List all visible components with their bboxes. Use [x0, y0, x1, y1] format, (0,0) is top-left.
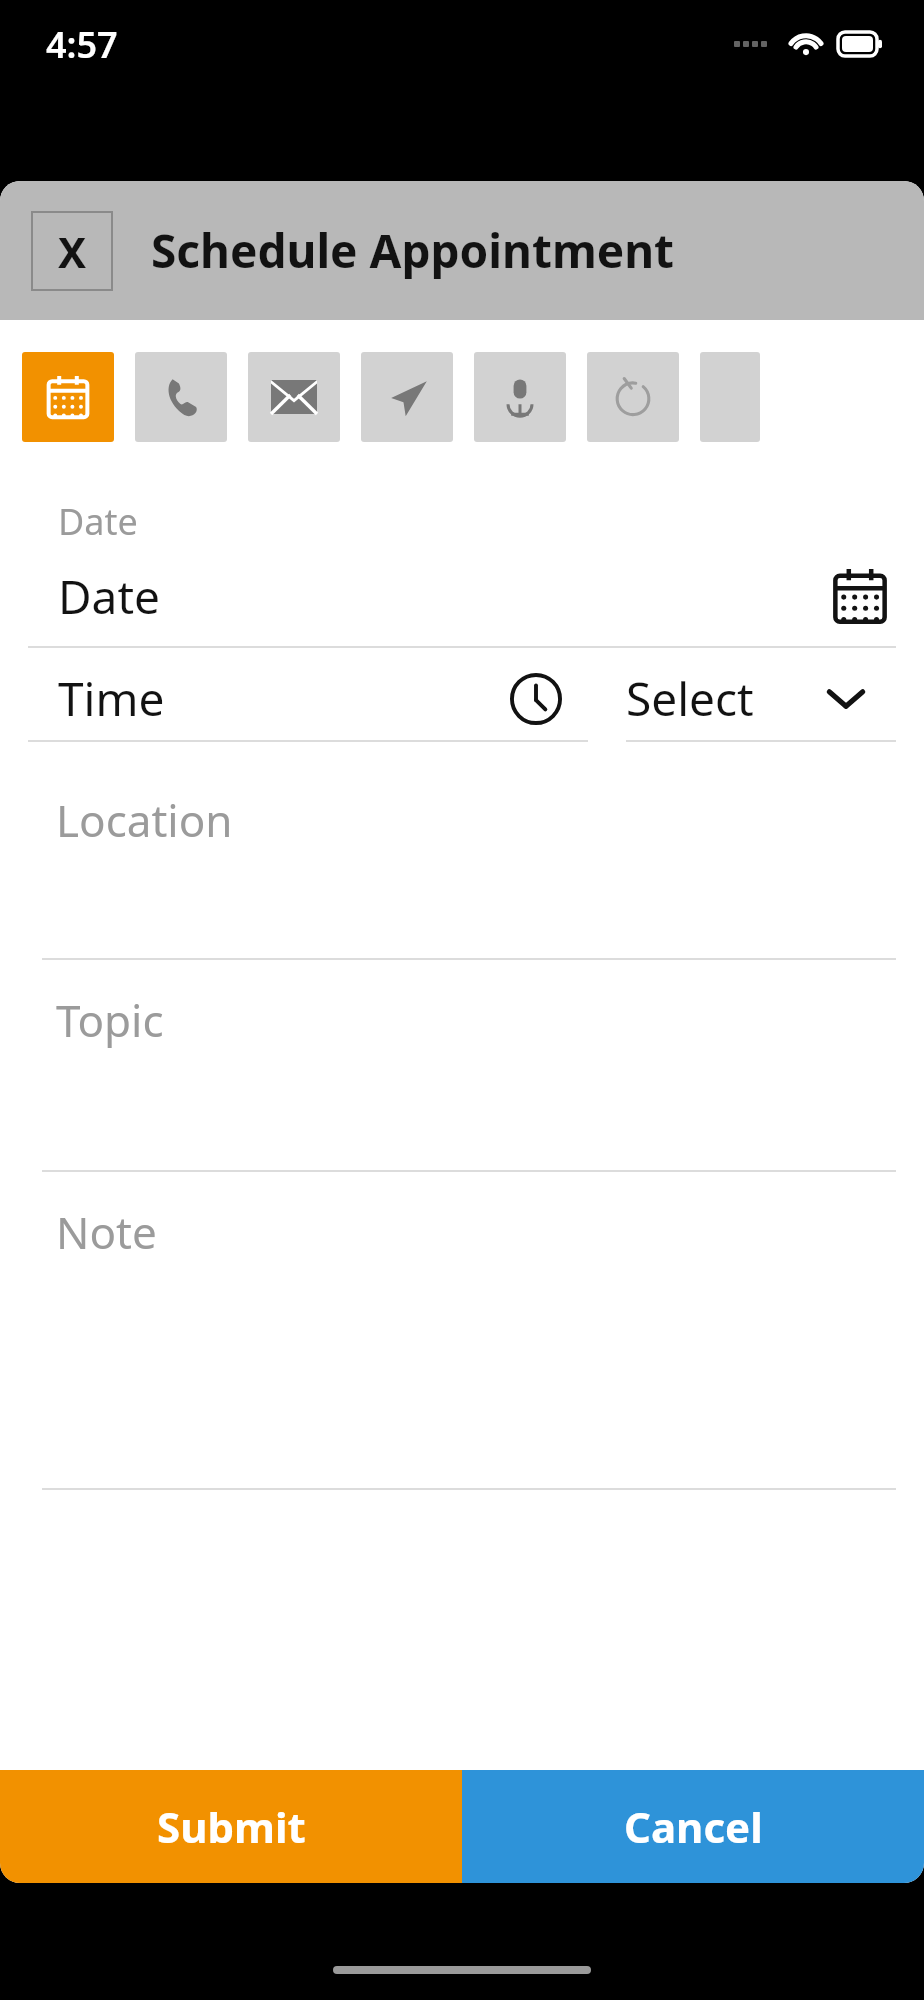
staticText: Note — [56, 1202, 157, 1262]
staticText: Date — [58, 565, 160, 628]
staticText: Topic — [56, 990, 164, 1050]
button[interactable]: Call — [135, 352, 227, 442]
button[interactable]: Select — [626, 667, 896, 740]
button[interactable]: Note — [0, 1172, 924, 1490]
button[interactable]: Reset — [587, 352, 679, 442]
staticText: Time — [58, 667, 165, 730]
button[interactable]: Submit — [0, 1770, 462, 1883]
staticText: Date — [58, 497, 138, 546]
staticText: Location — [56, 790, 233, 850]
button[interactable]: Time — [0, 667, 592, 740]
staticText: Cancel — [624, 1798, 763, 1855]
button[interactable]: Date — [0, 546, 924, 646]
staticText: Schedule Appointment — [151, 219, 675, 282]
button[interactable]: Voice — [474, 352, 566, 442]
staticText: 4:57 — [46, 20, 118, 69]
staticText: X — [58, 223, 87, 280]
staticText: Submit — [157, 1798, 306, 1855]
button[interactable]: Send — [361, 352, 453, 442]
staticText: Select — [626, 667, 754, 730]
other: Pick date — [832, 568, 888, 624]
button[interactable]: Email — [248, 352, 340, 442]
button[interactable]: Cancel — [462, 1770, 924, 1883]
button[interactable]: Calendar — [22, 352, 114, 442]
button[interactable]: Location — [0, 760, 924, 960]
button[interactable]: Topic — [0, 960, 924, 1172]
other: Pick time — [510, 673, 562, 725]
button[interactable]: Close — [31, 211, 113, 291]
